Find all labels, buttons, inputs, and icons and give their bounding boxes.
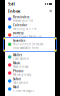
staticText: 9:41: [8, 1, 15, 7]
button[interactable]: Safari: [5, 77, 55, 85]
staticText: Calendar: [13, 23, 27, 27]
staticText: Inbox: [8, 8, 20, 14]
staticText: now available here: [13, 46, 39, 50]
staticText: Low Power Mode on: [13, 35, 42, 38]
button[interactable]: Music: [5, 61, 55, 69]
button[interactable]: Favorites: [5, 39, 55, 53]
staticText: Your pinned items are: [13, 42, 44, 46]
staticText: Review your list: [13, 19, 33, 22]
staticText: Favorites: [13, 39, 25, 42]
staticText: Photos: [13, 69, 23, 73]
staticText: Meeting at 3 PM: [13, 27, 36, 30]
button[interactable]: Profile: [49, 10, 52, 12]
button[interactable]: Wallet: [5, 53, 55, 61]
staticText: Mail: [13, 85, 19, 89]
button[interactable]: Reminders: [5, 15, 55, 23]
staticText: Battery: [13, 31, 23, 35]
button[interactable]: Battery: [5, 31, 55, 39]
button[interactable]: Calendar: [5, 23, 55, 31]
staticText: Safari: [13, 77, 21, 81]
staticText: Reminders: [13, 15, 29, 19]
staticText: Card added: [13, 57, 29, 60]
button[interactable]: Photos: [5, 69, 55, 77]
staticText: Wallet: [13, 53, 22, 57]
staticText: New release: [13, 65, 29, 68]
staticText: Memory ready: [13, 73, 31, 76]
staticText: Music: [13, 61, 20, 65]
button[interactable]: Mail: [5, 85, 55, 93]
staticText: 3 new messages: [13, 89, 34, 92]
staticText: Tabs synced: [13, 81, 28, 84]
